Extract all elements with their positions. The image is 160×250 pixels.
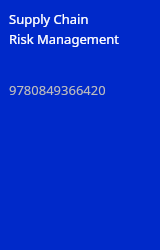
staticText: Supply Chain Risk Management bbox=[9, 10, 119, 48]
staticText: 9780849366420 bbox=[9, 81, 106, 99]
button[interactable]: Supply Chain Risk Management book cover bbox=[0, 0, 160, 250]
